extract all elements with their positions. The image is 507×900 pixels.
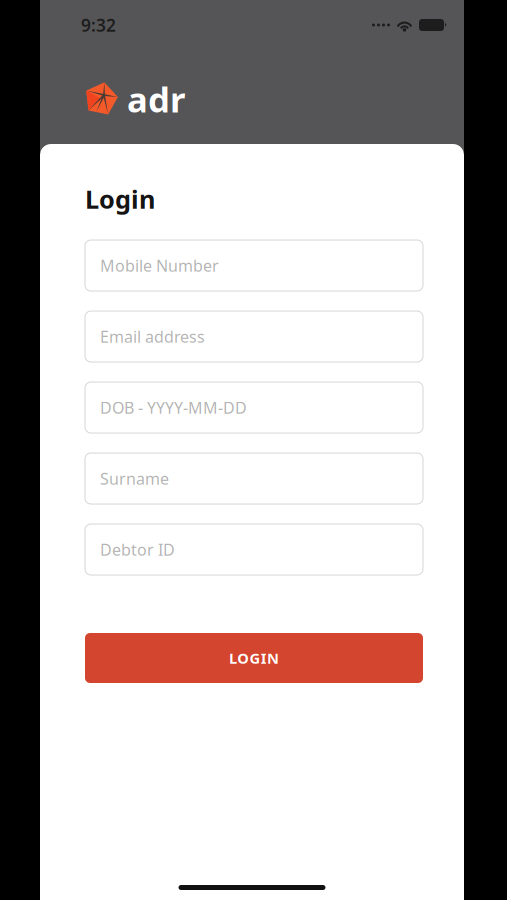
button[interactable]: Debtor ID	[85, 524, 423, 575]
staticText: Login	[85, 182, 155, 216]
button[interactable]: DOB - YYYY-MM-DD	[85, 382, 423, 433]
button[interactable]: LOGIN	[85, 633, 423, 683]
staticText: LOGIN	[229, 648, 279, 668]
staticText: adr	[127, 76, 185, 122]
staticText: 9:32	[81, 13, 116, 36]
staticText: Mobile Number	[100, 255, 219, 276]
staticText: Debtor ID	[100, 539, 175, 560]
staticText: DOB - YYYY-MM-DD	[100, 397, 247, 418]
staticText: Surname	[100, 468, 169, 489]
button[interactable]: Email address	[85, 311, 423, 362]
button[interactable]: Mobile Number	[85, 240, 423, 291]
staticText: Email address	[100, 326, 205, 347]
button[interactable]: Surname	[85, 453, 423, 504]
